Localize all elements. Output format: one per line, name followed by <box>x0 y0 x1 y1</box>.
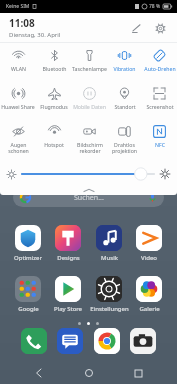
staticText: Mobile Daten <box>73 103 106 110</box>
staticText: Bluetooth <box>42 65 67 72</box>
staticText: Huawei Share <box>1 103 35 110</box>
button[interactable]: Video <box>129 225 169 262</box>
button[interactable]: Auto-Drehen <box>142 43 177 81</box>
staticText: NFC <box>155 141 165 148</box>
button[interactable]: Übersicht <box>127 362 149 384</box>
staticText: 11:08 <box>9 16 35 30</box>
button[interactable]: Suchen... <box>13 188 164 207</box>
button[interactable]: Chrome <box>94 328 120 354</box>
staticText: 78 % <box>149 3 161 10</box>
button[interactable]: Bluetooth <box>36 43 72 81</box>
staticText: Musik <box>101 254 118 262</box>
staticText: Vibration <box>113 65 136 72</box>
staticText: Auto-Drehen <box>144 65 176 72</box>
staticText: Optimizer <box>14 254 42 262</box>
button[interactable]: NFC <box>142 119 177 163</box>
button[interactable]: Kamera <box>130 328 156 354</box>
button[interactable]: Optimizer <box>8 225 48 262</box>
button[interactable]: Musik <box>89 225 129 262</box>
button[interactable] <box>22 168 154 180</box>
button[interactable]: Einstellungen <box>89 276 129 313</box>
staticText: Designs <box>57 254 80 262</box>
staticText: Standort <box>114 103 136 110</box>
staticText: Play Store <box>54 305 82 313</box>
staticText: Keine SIM <box>6 3 30 10</box>
button[interactable]: Drahtlos projektion <box>107 119 142 163</box>
button[interactable]: Screenshot <box>142 81 177 119</box>
button[interactable]: Galerie <box>129 276 169 313</box>
staticText: Video <box>141 254 157 262</box>
button[interactable]: Startseite <box>78 362 100 384</box>
staticText: Dienstag, 30. April <box>9 31 61 39</box>
button[interactable]: WLAN <box>0 43 36 81</box>
staticText: Hotspot <box>44 141 64 148</box>
staticText: Bildschirm rekorder <box>77 141 103 155</box>
button[interactable]: Zurück <box>28 362 50 384</box>
button[interactable]: Hotspot <box>36 119 72 163</box>
button[interactable]: Nachrichten <box>57 328 83 354</box>
button[interactable]: Play Store <box>48 276 88 313</box>
button[interactable]: Bildschirm rekorder <box>72 119 107 163</box>
staticText: WLAN <box>11 65 26 72</box>
staticText: Taschenlampe <box>72 65 107 72</box>
staticText: Drahtlos projektion <box>112 141 137 155</box>
button[interactable]: Google <box>8 276 48 313</box>
staticText: Screenshot <box>146 103 174 110</box>
button[interactable]: Augen schonen <box>0 119 36 163</box>
button[interactable]: Telefon <box>21 328 47 354</box>
staticText: Google <box>18 305 39 313</box>
staticText: Augen schonen <box>8 141 29 155</box>
button[interactable]: Mobile Daten <box>72 81 107 119</box>
button[interactable]: Einklappen <box>0 185 177 195</box>
button[interactable]: Vibration <box>107 43 142 81</box>
button[interactable]: Bearbeiten <box>127 19 145 37</box>
button[interactable]: Taschenlampe <box>72 43 107 81</box>
button[interactable]: Designs <box>48 225 88 262</box>
button[interactable]: Flugmodus <box>36 81 72 119</box>
staticText: Flugmodus <box>40 103 68 110</box>
staticText: Einstellungen <box>90 305 129 313</box>
staticText: Suchen... <box>74 193 104 203</box>
button[interactable]: Huawei Share <box>0 81 36 119</box>
button[interactable]: Einstellungen <box>151 19 169 37</box>
button[interactable]: Standort <box>107 81 142 119</box>
staticText: Galerie <box>139 305 160 313</box>
